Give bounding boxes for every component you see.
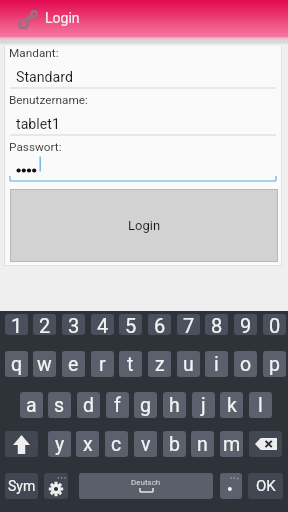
staticText: x xyxy=(83,433,93,456)
staticText: h xyxy=(169,394,180,417)
staticText: j xyxy=(201,394,206,417)
other: App icon xyxy=(14,6,40,32)
staticText: f xyxy=(114,394,121,417)
staticText: 0 xyxy=(269,314,281,335)
button[interactable]: 3 xyxy=(62,314,85,335)
button[interactable]: c xyxy=(105,431,128,457)
staticText: d xyxy=(83,394,94,417)
button[interactable]: l xyxy=(249,392,272,418)
button[interactable]: h xyxy=(163,392,186,418)
staticText: tablet1 xyxy=(16,116,60,133)
button[interactable]: j xyxy=(192,392,215,418)
button[interactable]: Shift xyxy=(5,431,38,457)
button[interactable]: k xyxy=(220,392,243,418)
button[interactable]: e xyxy=(62,351,85,377)
staticText: 4 xyxy=(97,314,109,335)
button[interactable]: 4 xyxy=(91,314,114,335)
staticText: o xyxy=(240,353,252,376)
button[interactable]: Sym xyxy=(5,473,38,499)
staticText: 7 xyxy=(183,314,195,335)
staticText: 1 xyxy=(11,314,23,335)
staticText: w xyxy=(37,353,52,376)
staticText: 3 xyxy=(68,314,80,335)
staticText: 6 xyxy=(154,314,166,335)
button[interactable]: 6 xyxy=(148,314,171,335)
staticText: Passwort: xyxy=(9,140,62,154)
button[interactable]: s xyxy=(48,392,71,418)
staticText: 9 xyxy=(240,314,252,335)
button[interactable]: x xyxy=(76,431,99,457)
button[interactable]: i xyxy=(205,351,228,377)
staticText: 8 xyxy=(211,314,223,335)
staticText: p xyxy=(269,353,280,376)
staticText: g xyxy=(140,394,151,417)
button[interactable]: n xyxy=(191,431,214,457)
button[interactable]: Space xyxy=(79,473,213,499)
button[interactable]: u xyxy=(177,351,200,377)
button[interactable]: 5 xyxy=(119,314,142,335)
button[interactable]: Settings xyxy=(44,473,68,499)
staticText: l xyxy=(258,394,263,417)
button[interactable]: f xyxy=(106,392,129,418)
staticText: Login xyxy=(128,218,161,233)
button[interactable]: OK xyxy=(248,473,283,499)
staticText: Login xyxy=(45,10,80,26)
staticText: c xyxy=(111,433,122,456)
staticText: b xyxy=(169,433,180,456)
staticText: 2 xyxy=(39,314,51,335)
staticText: a xyxy=(26,394,37,417)
button[interactable]: Backspace xyxy=(249,431,282,457)
staticText: t xyxy=(127,353,134,376)
button[interactable]: t xyxy=(119,351,142,377)
staticText: m xyxy=(223,433,241,456)
button[interactable]: p xyxy=(263,351,286,377)
staticText: OK xyxy=(256,477,276,495)
staticText: s xyxy=(54,394,65,417)
staticText: i xyxy=(214,353,219,376)
button[interactable]: w xyxy=(33,351,56,377)
staticText: e xyxy=(68,353,79,376)
button[interactable]: v xyxy=(134,431,157,457)
button[interactable]: o xyxy=(234,351,257,377)
staticText: q xyxy=(11,353,23,376)
staticText: Standard xyxy=(16,69,74,86)
staticText: Deutsch xyxy=(131,478,161,487)
button[interactable]: 1 xyxy=(5,314,28,335)
staticText: Benutzername: xyxy=(9,93,88,107)
button[interactable]: r xyxy=(91,351,114,377)
staticText: r xyxy=(99,353,106,376)
button[interactable]: 7 xyxy=(177,314,200,335)
button[interactable]: y xyxy=(48,431,71,457)
button[interactable]: g xyxy=(134,392,157,418)
button[interactable]: b xyxy=(163,431,186,457)
staticText: n xyxy=(197,433,208,456)
button[interactable]: Login xyxy=(11,190,277,261)
staticText: y xyxy=(55,433,65,456)
button[interactable]: m xyxy=(220,431,243,457)
staticText: 5 xyxy=(125,314,137,335)
staticText: v xyxy=(141,433,151,456)
button[interactable]: 9 xyxy=(234,314,257,335)
staticText: Sym xyxy=(8,478,36,494)
staticText: k xyxy=(227,394,237,417)
button[interactable]: Punctuation xyxy=(220,473,242,499)
button[interactable]: 8 xyxy=(205,314,228,335)
button[interactable]: d xyxy=(77,392,100,418)
staticText: Mandant: xyxy=(9,46,59,60)
button[interactable]: a xyxy=(20,392,43,418)
button[interactable]: q xyxy=(5,351,28,377)
staticText: z xyxy=(155,353,165,376)
button[interactable]: 2 xyxy=(33,314,56,335)
button[interactable]: z xyxy=(148,351,171,377)
staticText: u xyxy=(183,353,194,376)
button[interactable]: 0 xyxy=(263,314,286,335)
